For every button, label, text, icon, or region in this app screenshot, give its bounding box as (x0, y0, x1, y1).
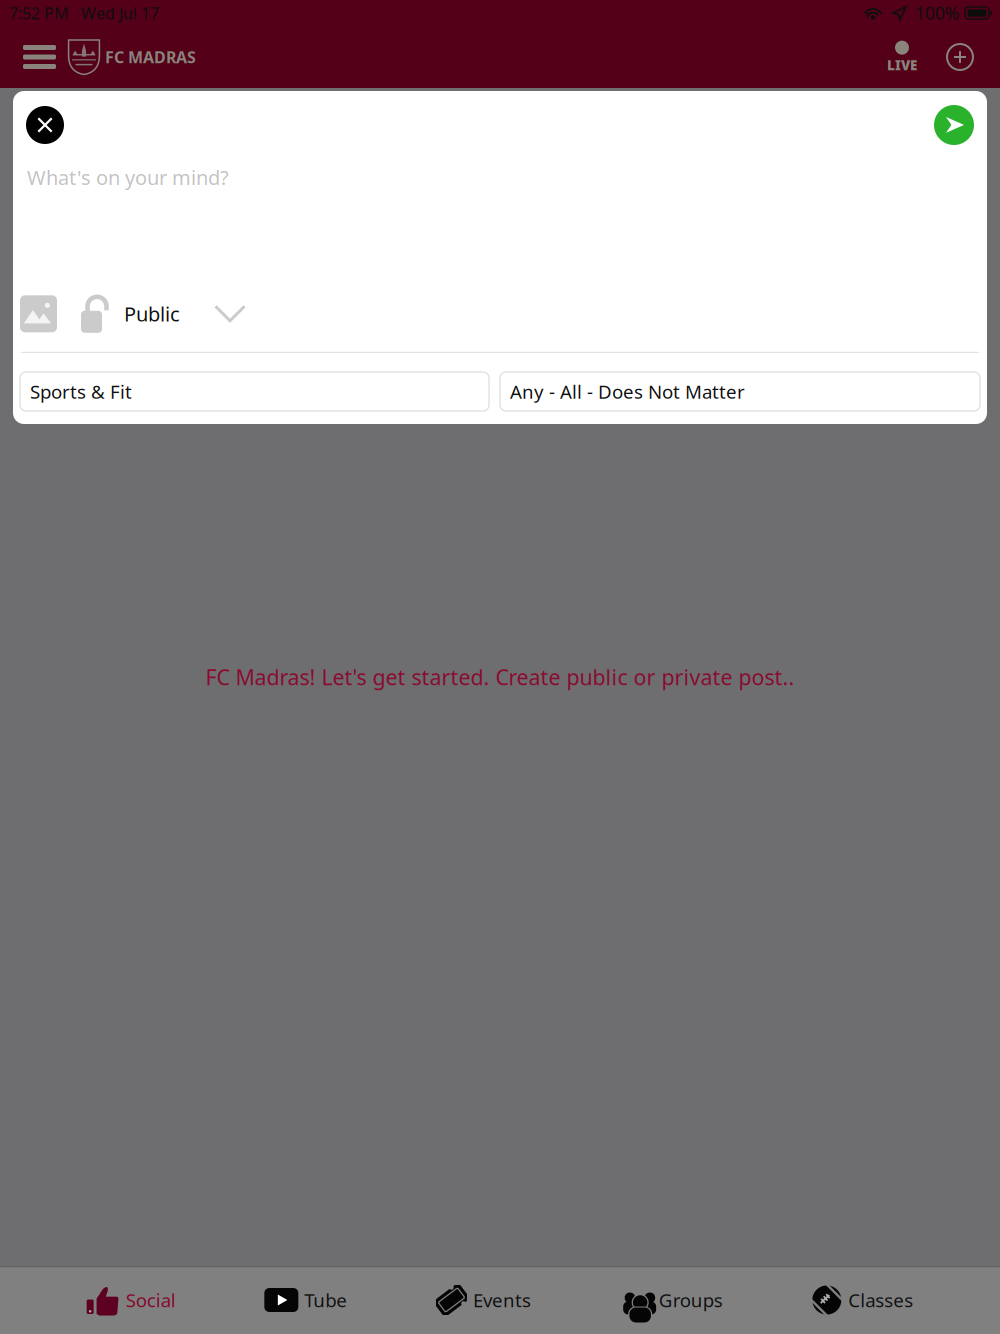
staticText: Public (124, 300, 180, 327)
button[interactable]: Audience: Public (57, 295, 246, 333)
button[interactable]: Events (430, 1265, 537, 1334)
staticText: Social (126, 1288, 176, 1312)
staticText: LIVE (887, 56, 917, 74)
button[interactable]: Tube (258, 1265, 353, 1334)
button[interactable]: Groups (614, 1265, 729, 1334)
staticText: Groups (659, 1288, 723, 1312)
staticText: What's on your mind? (27, 164, 229, 191)
button[interactable]: Any - All - Does Not Matter (500, 372, 980, 411)
button[interactable]: Close (26, 106, 64, 144)
staticText: Sports & Fit (30, 379, 132, 404)
button[interactable]: Create post (919, 38, 973, 76)
button[interactable]: Menu (12, 35, 67, 79)
staticText: 7:52 PM Wed Jul 17 (9, 2, 159, 24)
staticText: Events (473, 1288, 531, 1312)
button[interactable]: Classes (805, 1265, 919, 1334)
button[interactable]: Attach photo (20, 295, 57, 332)
staticText: 100% (915, 1, 959, 24)
staticText: FC MADRAS (105, 46, 196, 68)
button[interactable]: Social (81, 1265, 182, 1334)
staticText: Tube (304, 1288, 347, 1312)
button[interactable]: Sports & Fit (20, 372, 489, 411)
button[interactable]: Go live (885, 41, 919, 73)
button[interactable]: Post (934, 105, 974, 145)
staticText: Any - All - Does Not Matter (510, 379, 745, 404)
staticText: Classes (848, 1288, 913, 1312)
staticText: FC Madras! Let's get started. Create pub… (205, 663, 794, 691)
